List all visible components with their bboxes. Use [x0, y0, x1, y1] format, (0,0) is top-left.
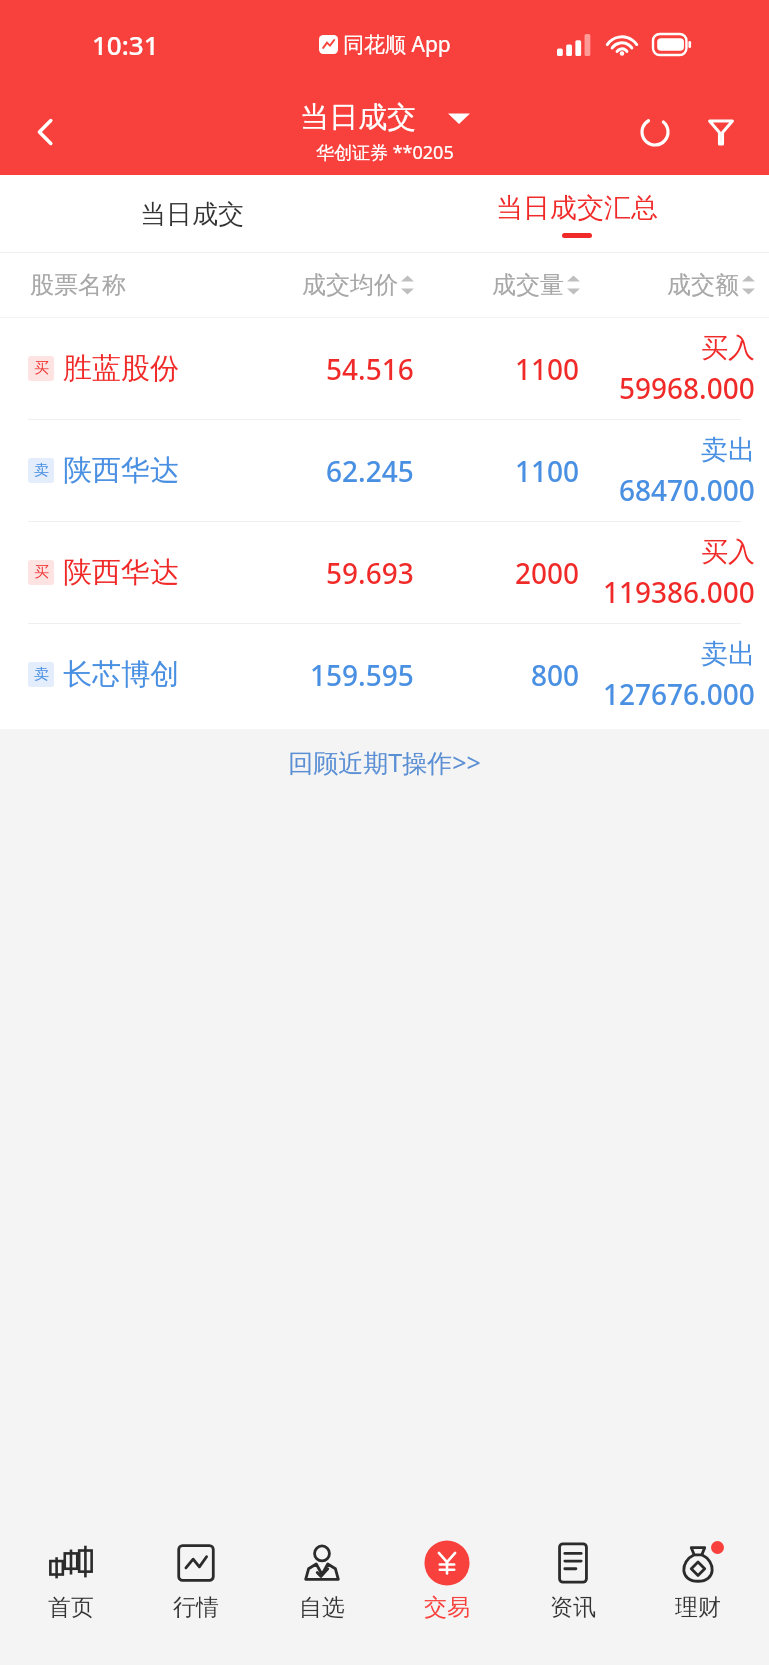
staticText: 59.693: [326, 554, 414, 592]
button[interactable]: 当日成交: [300, 99, 470, 165]
staticText: 交易: [424, 1593, 470, 1622]
button[interactable]: 交易: [392, 1539, 502, 1622]
staticText: 59968.000: [619, 369, 755, 407]
staticText: 陕西华达: [63, 554, 179, 591]
button[interactable]: 理财: [643, 1539, 753, 1622]
button[interactable]: 成交均价: [230, 270, 414, 300]
button[interactable]: 首页: [16, 1539, 126, 1622]
staticText: 68470.000: [619, 471, 755, 509]
staticText: 同花顺 App: [343, 30, 451, 59]
staticText: 800: [531, 656, 580, 694]
staticText: 理财: [675, 1593, 721, 1622]
staticText: 119386.000: [603, 573, 755, 611]
staticText: 陕西华达: [63, 452, 179, 489]
button[interactable]: 成交额: [580, 270, 755, 300]
button[interactable]: 成交量: [414, 270, 580, 300]
button[interactable]: Refresh: [629, 106, 681, 158]
staticText: 买入: [701, 535, 755, 569]
button[interactable]: 买: [0, 318, 769, 419]
button[interactable]: 自选: [267, 1539, 377, 1622]
staticText: 1100: [515, 350, 580, 388]
staticText: 10:31: [92, 27, 159, 62]
staticText: 卖: [34, 665, 49, 684]
button[interactable]: 买: [0, 522, 769, 623]
button[interactable]: 当日成交汇总: [384, 175, 769, 253]
staticText: 股票名称: [30, 270, 126, 300]
staticText: 自选: [299, 1593, 345, 1622]
button[interactable]: Back: [18, 104, 74, 160]
staticText: 华创证券 **0205: [316, 140, 454, 165]
staticText: 行情: [173, 1593, 219, 1622]
button[interactable]: 卖: [0, 624, 769, 725]
staticText: 127676.000: [603, 675, 755, 713]
button[interactable]: 资讯: [518, 1539, 628, 1622]
staticText: 买: [34, 563, 49, 582]
staticText: 买入: [701, 331, 755, 365]
staticText: 159.595: [310, 656, 414, 694]
staticText: 卖出: [701, 433, 755, 467]
staticText: 回顾近期T操作>>: [288, 745, 481, 779]
staticText: 长芯博创: [63, 656, 179, 693]
staticText: 买: [34, 359, 49, 378]
staticText: 62.245: [326, 452, 414, 490]
staticText: 胜蓝股份: [63, 350, 179, 387]
staticText: 首页: [48, 1593, 94, 1622]
staticText: 卖出: [701, 637, 755, 671]
button[interactable]: 当日成交: [0, 175, 384, 253]
staticText: 当日成交汇总: [496, 191, 658, 225]
staticText: 当日成交: [140, 198, 244, 231]
staticText: 卖: [34, 461, 49, 480]
button[interactable]: 卖: [0, 420, 769, 521]
staticText: 成交额: [667, 270, 739, 300]
staticText: 当日成交: [300, 99, 416, 136]
button[interactable]: 行情: [141, 1539, 251, 1622]
button[interactable]: Filter: [695, 106, 747, 158]
staticText: 1100: [515, 452, 580, 490]
button[interactable]: 回顾近期T操作>>: [276, 741, 493, 783]
staticText: 54.516: [326, 350, 414, 388]
staticText: 资讯: [550, 1593, 596, 1622]
staticText: 2000: [515, 554, 580, 592]
staticText: 成交量: [492, 270, 564, 300]
staticText: 成交均价: [302, 270, 398, 300]
